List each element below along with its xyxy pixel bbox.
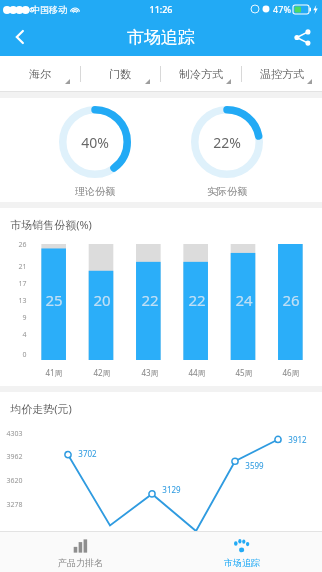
staticText: 4 (22, 330, 27, 340)
staticText: 中国移动 (31, 4, 67, 15)
staticText: 42周 (93, 367, 111, 378)
staticText: 海尔 (29, 67, 51, 81)
staticText: 46周 (282, 367, 300, 378)
button[interactable]: 温控方式 (241, 56, 322, 92)
staticText: 9 (22, 313, 27, 323)
staticText: 40% (81, 133, 109, 152)
staticText: 17 (18, 279, 27, 289)
staticText: 3278 (6, 500, 23, 510)
staticText: 均价走势(元) (10, 401, 72, 416)
staticText: 市场追踪 (127, 27, 195, 48)
staticText: 理论份额 (75, 185, 115, 198)
staticText: 3702 (78, 448, 97, 459)
button[interactable]: 制冷方式 (160, 56, 241, 92)
staticText: 13 (18, 296, 27, 306)
staticText: 43周 (141, 367, 159, 378)
staticText: 11:26 (149, 3, 173, 15)
button[interactable]: Share (282, 18, 322, 56)
staticText: 温控方式 (260, 67, 304, 81)
staticText: 3912 (288, 434, 307, 445)
staticText: 3962 (6, 452, 23, 462)
staticText: 市场追踪 (224, 557, 260, 568)
button[interactable]: 门数 (80, 56, 160, 92)
staticText: 3620 (6, 476, 23, 486)
staticText: 26 (282, 290, 300, 310)
button[interactable]: Back (0, 18, 40, 56)
staticText: 24 (235, 290, 253, 310)
staticText: 市场销售份额(%) (10, 217, 92, 232)
staticText: 实际份额 (207, 185, 247, 198)
staticText: 21 (18, 262, 27, 272)
staticText: 22 (141, 290, 159, 310)
staticText: 25 (45, 290, 63, 310)
button[interactable]: 产品力排名 (0, 532, 161, 572)
staticText: 47% (273, 3, 291, 15)
staticText: 制冷方式 (179, 67, 223, 81)
staticText: 20 (93, 290, 111, 310)
staticText: 3599 (245, 460, 264, 471)
staticText: 门数 (109, 67, 131, 81)
staticText: 41周 (45, 367, 63, 378)
staticText: 4303 (6, 429, 23, 439)
staticText: 45周 (235, 367, 253, 378)
staticText: 26 (18, 240, 27, 250)
button[interactable]: 市场追踪 (161, 532, 322, 572)
staticText: 3129 (162, 484, 181, 495)
staticText: 0 (22, 350, 27, 360)
staticText: 44周 (188, 367, 206, 378)
staticText: 22 (188, 290, 206, 310)
button[interactable]: 海尔 (0, 56, 80, 92)
staticText: 产品力排名 (58, 557, 103, 568)
staticText: 22% (213, 133, 241, 152)
